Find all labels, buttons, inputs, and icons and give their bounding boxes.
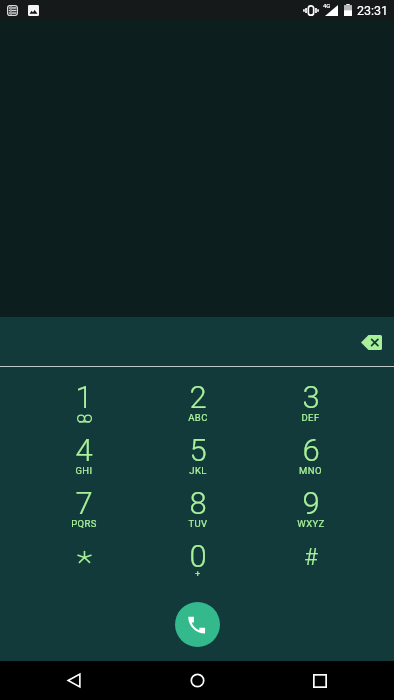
button[interactable]: 6	[254, 429, 367, 482]
staticText: WXYZ	[297, 518, 325, 529]
button[interactable]: Home	[169, 661, 225, 700]
staticText: 2	[189, 379, 207, 415]
button[interactable]: 2	[141, 376, 254, 429]
button[interactable]: 0	[141, 535, 254, 588]
button[interactable]: 5	[141, 429, 254, 482]
button[interactable]	[27, 535, 141, 588]
staticText: 1	[75, 379, 93, 415]
staticText: 0	[189, 538, 207, 574]
button[interactable]: Back	[46, 661, 102, 700]
staticText: 3	[302, 379, 320, 415]
button[interactable]: 8	[141, 482, 254, 535]
staticText: 23:31	[357, 3, 389, 18]
button[interactable]: 4	[27, 429, 141, 482]
staticText: +	[195, 568, 201, 579]
staticText: PQRS	[71, 518, 97, 529]
button[interactable]: Backspace	[354, 325, 388, 359]
button[interactable]: Call	[175, 602, 220, 647]
staticText: 4G	[323, 2, 331, 9]
staticText: 5	[189, 432, 207, 468]
staticText: DEF	[301, 412, 320, 423]
button[interactable]: 1	[27, 376, 141, 429]
staticText: 9	[302, 485, 320, 521]
staticText: TUV	[188, 518, 208, 529]
staticText: 8	[189, 485, 207, 521]
button[interactable]: 7	[27, 482, 141, 535]
staticText: 6	[302, 432, 320, 468]
staticText: 4	[75, 432, 93, 468]
staticText: #	[304, 544, 318, 571]
staticText: 7	[75, 485, 93, 521]
button[interactable]: 3	[254, 376, 367, 429]
button[interactable]: #	[254, 535, 367, 588]
button[interactable]: Recent apps	[292, 661, 348, 700]
button[interactable]: 9	[254, 482, 367, 535]
staticText: JKL	[189, 465, 207, 476]
staticText: MNO	[299, 465, 322, 476]
staticText: ABC	[188, 412, 208, 423]
staticText: GHI	[75, 465, 93, 476]
